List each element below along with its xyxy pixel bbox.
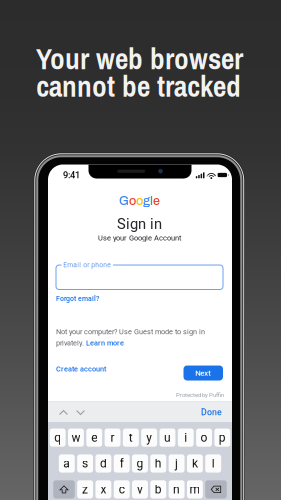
- staticText: t: [129, 431, 133, 445]
- button[interactable]: Forgot email?: [56, 294, 99, 303]
- staticText: z: [82, 482, 88, 496]
- staticText: q: [54, 431, 61, 445]
- staticText: Not your computer? Use Guest mode to sig…: [56, 327, 205, 336]
- button[interactable]: v: [132, 480, 148, 498]
- staticText: v: [137, 482, 143, 496]
- staticText: u: [164, 431, 171, 445]
- staticText: m: [189, 482, 200, 496]
- button[interactable]: y: [141, 428, 157, 447]
- staticText: 9:41: [63, 170, 80, 180]
- staticText: Next: [195, 368, 211, 378]
- button[interactable]: c: [114, 480, 130, 498]
- button[interactable]: l: [205, 454, 221, 473]
- button[interactable]: Previous field: [55, 405, 72, 420]
- staticText: o: [136, 194, 143, 207]
- staticText: c: [119, 482, 125, 496]
- button[interactable]: i: [178, 428, 194, 447]
- staticText: Done: [201, 407, 222, 417]
- button[interactable]: h: [150, 454, 166, 473]
- staticText: Protected by Puffin: [176, 391, 224, 398]
- staticText: w: [71, 431, 80, 445]
- button[interactable]: Done: [201, 407, 222, 417]
- button[interactable]: t: [123, 428, 139, 447]
- staticText: f: [120, 456, 124, 471]
- button[interactable]: j: [169, 454, 184, 473]
- staticText: Your web browser: [36, 39, 243, 78]
- staticText: Email or phone: [63, 261, 111, 269]
- button[interactable]: o: [196, 428, 212, 447]
- button[interactable]: d: [95, 454, 111, 473]
- button[interactable]: q: [50, 428, 66, 447]
- staticText: r: [110, 431, 114, 445]
- staticText: j: [175, 456, 178, 471]
- staticText: o: [129, 194, 136, 207]
- staticText: s: [82, 456, 88, 471]
- button[interactable]: b: [150, 480, 166, 498]
- staticText: h: [155, 456, 162, 471]
- button[interactable]: Shift: [53, 480, 75, 498]
- staticText: Forgot email?: [56, 294, 99, 303]
- button[interactable]: u: [159, 428, 175, 447]
- staticText: o: [200, 431, 207, 445]
- staticText: n: [173, 482, 180, 496]
- staticText: l: [212, 456, 215, 471]
- staticText: e: [153, 194, 160, 207]
- staticText: privately.: [56, 339, 86, 347]
- button[interactable]: Learn more: [86, 339, 124, 347]
- button[interactable]: r: [105, 428, 120, 447]
- button[interactable]: w: [68, 428, 84, 447]
- staticText: g: [136, 456, 143, 471]
- button[interactable]: g: [132, 454, 148, 473]
- staticText: Use your Google Account: [98, 233, 181, 242]
- button[interactable]: m: [187, 480, 203, 498]
- button[interactable]: z: [77, 480, 93, 498]
- button[interactable]: Next field: [72, 405, 89, 420]
- staticText: e: [91, 431, 97, 445]
- staticText: a: [63, 456, 70, 471]
- button[interactable]: x: [95, 480, 111, 498]
- button[interactable]: Next: [183, 365, 223, 380]
- staticText: i: [184, 431, 187, 445]
- staticText: Create account: [56, 365, 106, 373]
- staticText: p: [219, 431, 226, 445]
- staticText: Sign in: [117, 215, 162, 233]
- button[interactable]: p: [214, 428, 230, 447]
- button[interactable]: a: [59, 454, 75, 473]
- button[interactable]: Create account: [56, 365, 106, 373]
- staticText: k: [192, 456, 198, 471]
- button[interactable]: e: [86, 428, 102, 447]
- staticText: b: [155, 482, 162, 496]
- button[interactable]: s: [77, 454, 93, 473]
- staticText: d: [100, 456, 107, 471]
- staticText: Learn more: [86, 339, 124, 347]
- staticText: l: [150, 194, 153, 207]
- staticText: G: [119, 194, 129, 207]
- button[interactable]: k: [187, 454, 203, 473]
- staticText: x: [100, 482, 106, 496]
- staticText: cannot be tracked: [36, 66, 241, 106]
- button[interactable]: Delete: [205, 480, 227, 498]
- staticText: g: [143, 194, 150, 207]
- staticText: y: [146, 431, 152, 445]
- button[interactable]: f: [114, 454, 130, 473]
- button[interactable]: n: [169, 480, 184, 498]
